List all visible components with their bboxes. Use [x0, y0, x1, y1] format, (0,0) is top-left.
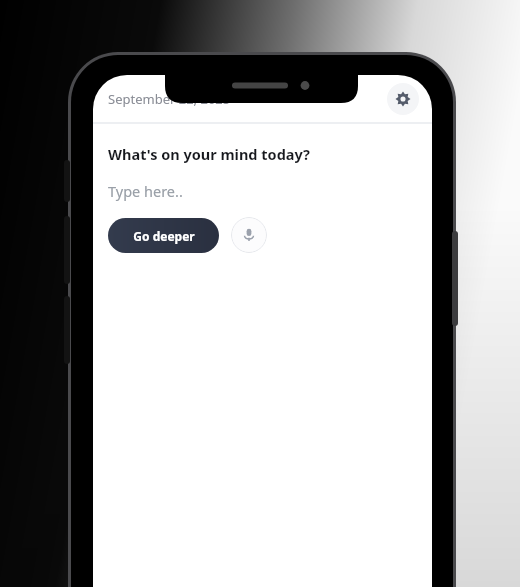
staticText: September 22, 2025 — [108, 90, 231, 108]
staticText: Go deeper — [133, 228, 195, 244]
staticText: Type here.. — [108, 181, 183, 201]
button[interactable]: Go deeper — [108, 218, 219, 253]
button[interactable]: Type here.. — [93, 178, 432, 204]
button[interactable]: Settings — [387, 83, 419, 115]
button[interactable]: Voice input — [231, 217, 267, 253]
staticText: What's on your mind today? — [108, 144, 310, 164]
